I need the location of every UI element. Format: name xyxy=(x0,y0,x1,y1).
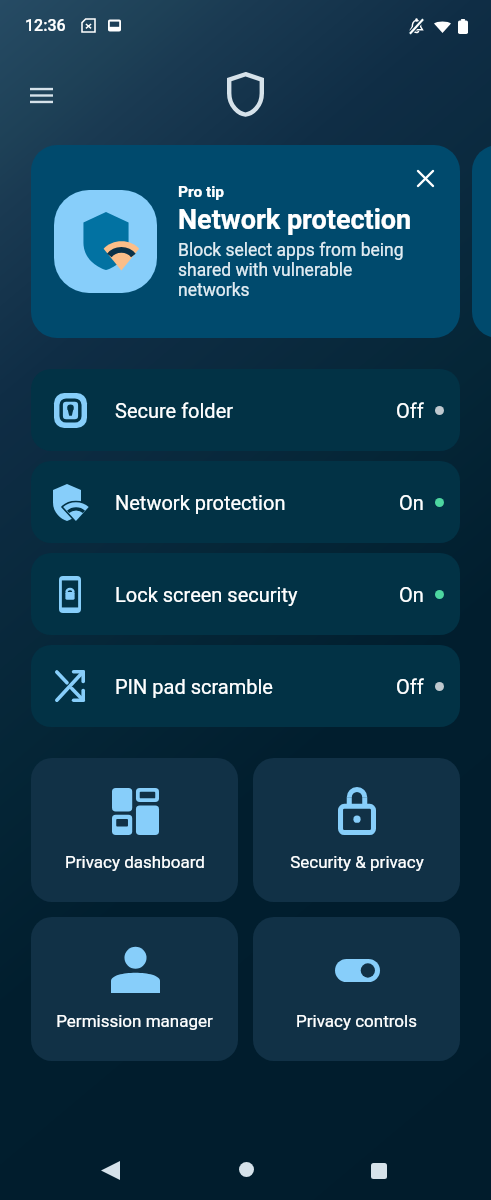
button[interactable]: Privacy controls xyxy=(253,917,460,1061)
staticText: Privacy controls xyxy=(296,1011,417,1031)
button[interactable]: Network protection xyxy=(31,461,460,543)
staticText: Block select apps from being shared with… xyxy=(178,240,404,300)
button[interactable]: Recents xyxy=(355,1147,403,1195)
staticText: Network protection xyxy=(115,491,286,514)
button[interactable]: Permission manager xyxy=(31,917,238,1061)
staticText: Off xyxy=(396,399,424,422)
staticText: On xyxy=(399,491,424,514)
button[interactable]: PIN pad scramble xyxy=(31,645,460,727)
button[interactable]: Lock screen security xyxy=(31,553,460,635)
staticText: PIN pad scramble xyxy=(115,675,273,698)
staticText: Security & privacy xyxy=(290,852,424,872)
button[interactable]: Pro tip xyxy=(31,145,460,338)
button[interactable]: Security & privacy xyxy=(253,758,460,902)
staticText: Permission manager xyxy=(56,1011,213,1031)
button[interactable]: Secure folder xyxy=(31,369,460,451)
staticText: 12:36 xyxy=(25,16,66,35)
staticText: On xyxy=(399,583,424,606)
button[interactable]: Close xyxy=(403,156,447,200)
button[interactable]: Home xyxy=(222,1145,270,1193)
staticText: Secure folder xyxy=(115,399,234,422)
staticText: Lock screen security xyxy=(115,583,298,606)
button[interactable]: Menu xyxy=(19,73,64,118)
staticText: Off xyxy=(396,675,424,698)
button[interactable]: Privacy dashboard xyxy=(31,758,238,902)
button[interactable]: Back xyxy=(86,1146,134,1194)
staticText: Pro tip xyxy=(178,183,225,201)
staticText: Privacy dashboard xyxy=(65,852,205,872)
staticText: Network protection xyxy=(178,204,412,236)
